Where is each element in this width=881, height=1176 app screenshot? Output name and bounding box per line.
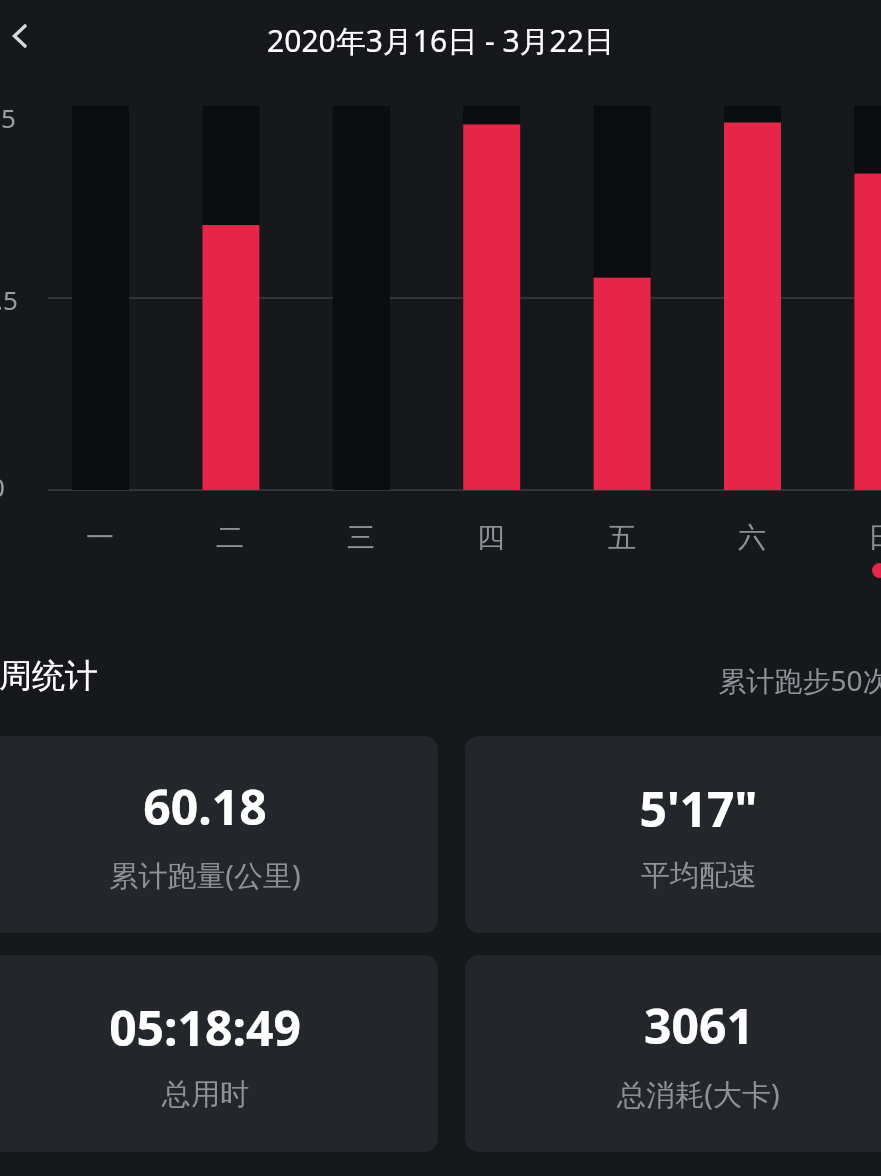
button[interactable]: Back	[0, 12, 44, 60]
button[interactable]: 05:18:49	[0, 955, 438, 1152]
staticText: 60.18	[143, 774, 267, 839]
staticText: 日	[868, 520, 881, 555]
staticText: 2020年3月16日 - 3月22日	[0, 20, 881, 61]
staticText: 0	[0, 469, 5, 504]
staticText: 7.5	[0, 282, 18, 317]
button[interactable]: 3061	[465, 955, 881, 1152]
staticText: 累计跑步50次	[718, 661, 881, 699]
staticText: 总消耗(大卡)	[617, 1074, 780, 1114]
staticText: 五	[608, 520, 636, 555]
staticText: 二	[216, 520, 244, 555]
staticText: 5'17"	[639, 776, 758, 841]
staticText: 平均配速	[641, 857, 757, 894]
staticText: 05:18:49	[109, 995, 301, 1060]
button[interactable]: 5'17"	[465, 736, 881, 933]
staticText: 15	[0, 100, 16, 135]
staticText: 一	[86, 520, 114, 555]
staticText: 三	[347, 520, 375, 555]
staticText: 本周统计	[0, 655, 98, 697]
staticText: 3061	[644, 993, 754, 1058]
staticText: 总用时	[162, 1076, 249, 1113]
staticText: 六	[738, 520, 766, 555]
staticText: 四	[477, 520, 505, 555]
staticText: 累计跑量(公里)	[109, 855, 301, 895]
button[interactable]: 60.18	[0, 736, 438, 933]
